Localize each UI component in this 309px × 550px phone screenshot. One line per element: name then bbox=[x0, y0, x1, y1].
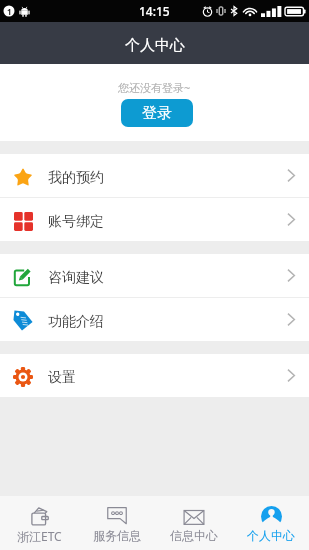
staticText: 设置 bbox=[48, 369, 76, 387]
button[interactable]: 信息中心 bbox=[155, 496, 232, 550]
button[interactable]: 设置 bbox=[0, 354, 309, 397]
staticText: 我的预约 bbox=[48, 169, 104, 187]
button[interactable]: 个人中心 bbox=[232, 496, 309, 550]
staticText: 您还没有登录~ bbox=[118, 80, 191, 95]
button[interactable]: 功能介绍 bbox=[0, 298, 309, 341]
staticText: 账号绑定 bbox=[48, 213, 104, 231]
staticText: 服务信息 bbox=[93, 528, 141, 543]
staticText: 个人中心 bbox=[125, 36, 185, 55]
button[interactable]: 咨询建议 bbox=[0, 254, 309, 297]
staticText: 登录 bbox=[142, 104, 172, 123]
staticText: 个人中心 bbox=[247, 528, 295, 543]
staticText: 浙江ETC bbox=[17, 528, 62, 544]
button[interactable]: 登录 bbox=[121, 99, 193, 127]
staticText: 咨询建议 bbox=[48, 269, 104, 287]
staticText: 信息中心 bbox=[170, 528, 218, 543]
button[interactable]: 账号绑定 bbox=[0, 198, 309, 241]
button[interactable]: 服务信息 bbox=[78, 496, 155, 550]
staticText: 14:15 bbox=[139, 3, 170, 19]
staticText: 功能介绍 bbox=[48, 313, 104, 331]
staticText: 1 bbox=[7, 6, 12, 17]
button[interactable]: 浙江ETC bbox=[0, 496, 78, 550]
button[interactable]: 我的预约 bbox=[0, 154, 309, 197]
